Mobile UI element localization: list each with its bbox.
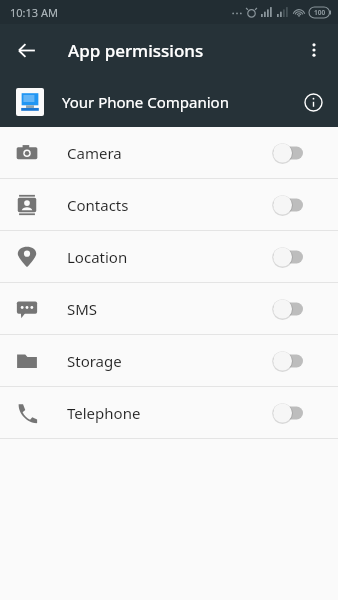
staticText: Storage: [67, 351, 122, 371]
button[interactable]: Telephone permission toggle: [270, 393, 326, 433]
button[interactable]: Storage: [0, 335, 338, 386]
button[interactable]: SMS: [0, 283, 338, 334]
button[interactable]: Location permission toggle: [270, 237, 326, 277]
staticText: Location: [67, 247, 128, 267]
button[interactable]: More options: [294, 30, 334, 70]
button[interactable]: Telephone: [0, 387, 338, 438]
staticText: Telephone: [67, 403, 141, 423]
staticText: 100: [314, 8, 326, 17]
button[interactable]: Back: [6, 30, 46, 70]
staticText: 10:13 AM: [10, 5, 58, 20]
staticText: App permissions: [68, 39, 204, 62]
staticText: Your Phone Companion: [62, 92, 229, 112]
button[interactable]: Camera permission toggle: [270, 133, 326, 173]
button[interactable]: Storage permission toggle: [270, 341, 326, 381]
staticText: SMS: [67, 299, 98, 319]
button[interactable]: App info: [292, 81, 334, 123]
button[interactable]: Contacts: [0, 179, 338, 230]
button[interactable]: SMS permission toggle: [270, 289, 326, 329]
staticText: Contacts: [67, 195, 129, 215]
button[interactable]: Camera: [0, 127, 338, 178]
button[interactable]: Your Phone Companion: [0, 76, 338, 127]
staticText: Camera: [67, 143, 122, 163]
button[interactable]: Location: [0, 231, 338, 282]
button[interactable]: Contacts permission toggle: [270, 185, 326, 225]
